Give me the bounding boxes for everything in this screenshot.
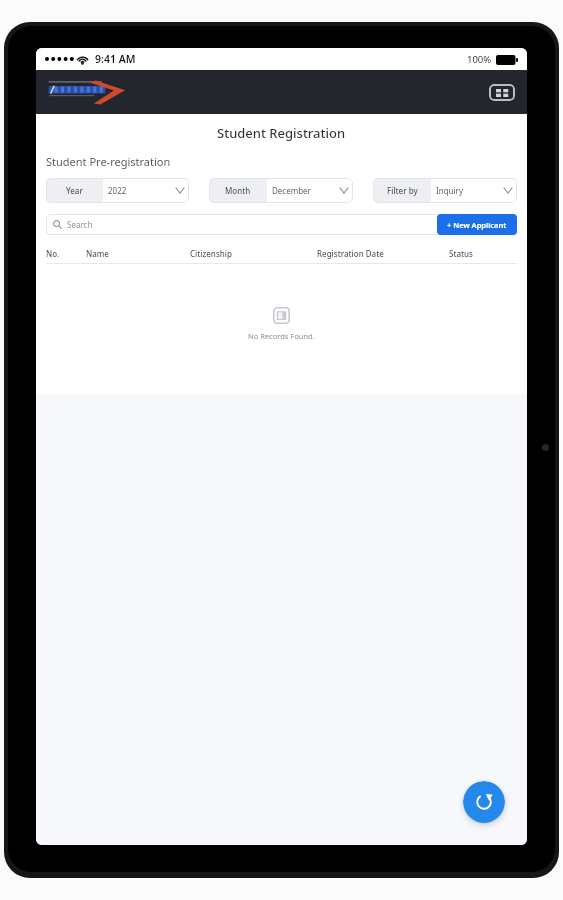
staticText: Name — [86, 248, 109, 259]
staticText: No. — [46, 248, 60, 259]
button[interactable]: Year — [46, 178, 189, 203]
button[interactable]: Refresh — [463, 781, 505, 823]
staticText: Status — [449, 248, 474, 259]
staticText: 2022 — [108, 185, 127, 196]
staticText: Student Registration — [217, 124, 346, 142]
staticText: No Records Found. — [248, 331, 315, 341]
staticText: Filter by — [387, 185, 418, 196]
staticText: Student Pre-registration — [46, 154, 171, 169]
staticText: December — [272, 185, 311, 196]
staticText: Citizenship — [190, 248, 232, 259]
staticText: 100% — [467, 53, 492, 66]
staticText: Year — [66, 185, 83, 196]
button[interactable]: Menu — [489, 84, 515, 101]
staticText: Month — [225, 185, 251, 196]
button[interactable]: Search — [53, 214, 517, 235]
button[interactable]: Filter by — [373, 178, 517, 203]
staticText: Search — [67, 219, 93, 230]
staticText: Registration Date — [317, 248, 384, 259]
button[interactable]: Month — [209, 178, 353, 203]
button[interactable]: + New Applicant — [437, 214, 517, 235]
staticText: 9:41 AM — [95, 52, 136, 66]
button[interactable]: Airworks logo — [46, 77, 132, 107]
staticText: Inquiry — [436, 185, 463, 196]
staticText: + New Applicant — [447, 220, 507, 230]
